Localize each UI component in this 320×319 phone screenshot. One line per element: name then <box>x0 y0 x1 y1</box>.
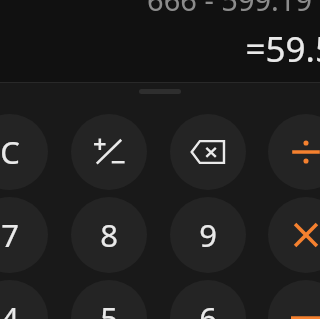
button[interactable]: Multiply <box>268 197 320 273</box>
staticText: 8 <box>100 214 118 256</box>
staticText: 666 - 599.19 <box>147 0 312 19</box>
staticText: C <box>0 131 20 173</box>
button[interactable]: 6 <box>170 280 246 319</box>
button[interactable]: 8 <box>71 197 147 273</box>
staticText: =59.5 <box>245 25 320 73</box>
button[interactable]: 9 <box>170 197 246 273</box>
button[interactable]: Plus minus <box>71 114 147 190</box>
staticText: 7 <box>1 214 19 256</box>
staticText: 9 <box>199 214 217 256</box>
button[interactable]: 5 <box>71 280 147 319</box>
staticText: 6 <box>199 297 217 319</box>
staticText: 5 <box>100 297 118 319</box>
button[interactable]: Clear <box>0 114 48 190</box>
button[interactable]: 4 <box>0 280 48 319</box>
staticText: 4 <box>1 297 19 319</box>
button[interactable]: 7 <box>0 197 48 273</box>
button[interactable]: Minus <box>268 280 320 319</box>
button[interactable]: Divide <box>268 114 320 190</box>
button[interactable]: Backspace <box>170 114 246 190</box>
